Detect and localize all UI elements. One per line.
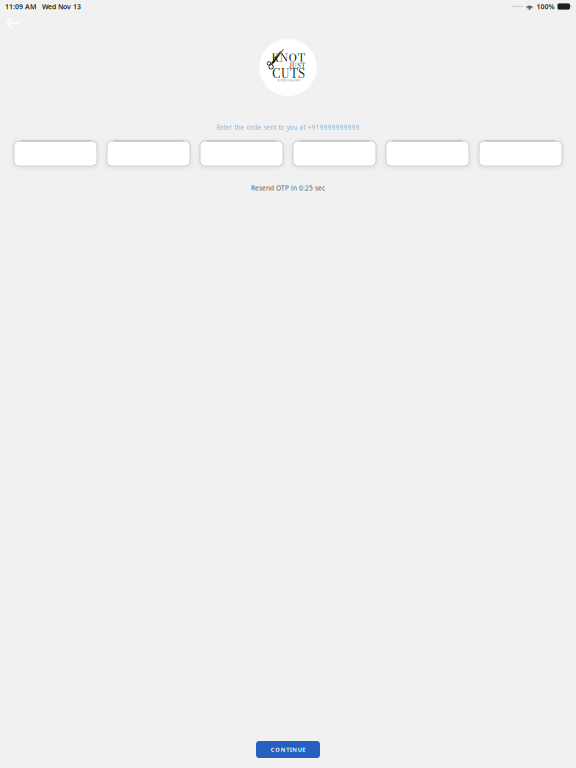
staticText: Resend OTP in 0:25 sec [251, 183, 325, 192]
staticText: CONTINUE [271, 746, 305, 753]
button[interactable]: Verification code digit 1 [13, 140, 97, 166]
staticText: 11:09 AM [5, 2, 36, 11]
button[interactable]: Verification code digit 6 [478, 140, 562, 166]
staticText: 100% [536, 2, 554, 11]
button[interactable]: Back [0, 16, 29, 32]
staticText: HAIR CUTS AND SALOONS [277, 79, 300, 82]
button[interactable]: CONTINUE [256, 741, 320, 758]
staticText: JUST [289, 61, 305, 70]
staticText: Enter the code sent to you at +919999999… [216, 123, 359, 131]
staticText: CUTS [272, 65, 305, 83]
button[interactable]: Verification code digit 4 [292, 140, 376, 166]
staticText: Wed Nov 13 [42, 2, 81, 11]
button[interactable]: Verification code digit 2 [106, 140, 190, 166]
button[interactable]: Verification code digit 5 [385, 140, 469, 166]
button[interactable]: Resend OTP in 0:25 sec [251, 183, 325, 192]
button[interactable]: Verification code digit 3 [199, 140, 283, 166]
staticText: KNOT [271, 49, 305, 66]
